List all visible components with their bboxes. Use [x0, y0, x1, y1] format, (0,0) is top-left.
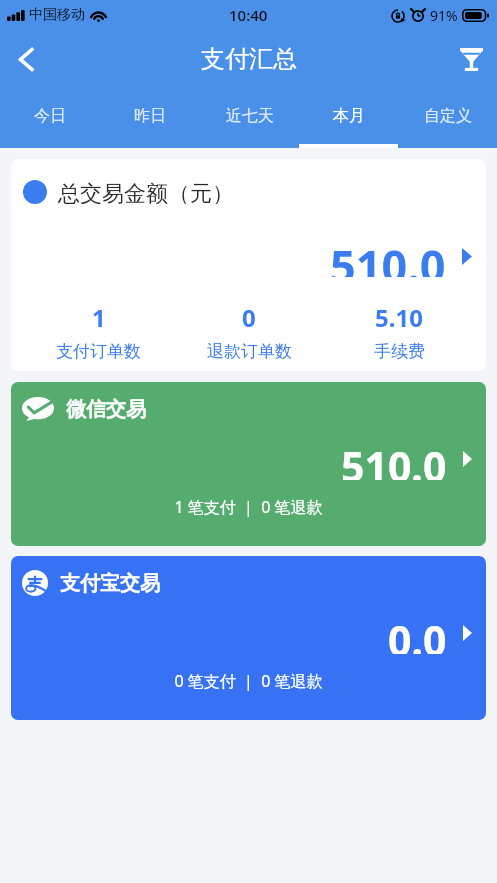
staticText: 91%: [430, 6, 458, 25]
button[interactable]: 本月: [299, 88, 398, 148]
staticText: 支付订单数: [56, 341, 141, 362]
staticText: 总交易金额（元）: [58, 180, 234, 204]
staticText: 退款订单数: [207, 341, 292, 362]
staticText: 中国移动: [29, 6, 85, 24]
staticText: 支付汇总: [201, 44, 297, 74]
staticText: 510.0: [330, 235, 446, 277]
staticText: 510.0: [341, 438, 447, 480]
staticText: 手续费: [374, 341, 425, 362]
staticText: 1 笔支付 | 0 笔退款: [11, 496, 486, 518]
button[interactable]: 近七天: [200, 88, 299, 148]
button[interactable]: 微信交易: [11, 382, 486, 546]
button[interactable]: 昨日: [100, 88, 200, 148]
staticText: 昨日: [134, 106, 166, 126]
staticText: 10:40: [229, 5, 268, 25]
staticText: 0: [242, 301, 256, 334]
staticText: 0 笔支付 | 0 笔退款: [11, 670, 486, 692]
button[interactable]: 总交易金额（元）: [11, 159, 486, 371]
button[interactable]: 今日: [0, 88, 100, 148]
button[interactable]: 支付宝交易: [11, 556, 486, 720]
staticText: 今日: [34, 106, 66, 126]
button[interactable]: 自定义: [398, 88, 497, 148]
staticText: 5.10: [375, 301, 423, 334]
staticText: 本月: [333, 106, 365, 126]
staticText: 自定义: [424, 106, 472, 126]
staticText: 支付宝交易: [60, 571, 160, 595]
staticText: 近七天: [226, 106, 274, 126]
staticText: 1: [92, 301, 106, 334]
staticText: 0.0: [388, 612, 447, 654]
button[interactable]: Filter: [443, 32, 497, 86]
button[interactable]: Back: [0, 33, 52, 85]
staticText: 微信交易: [66, 397, 146, 421]
